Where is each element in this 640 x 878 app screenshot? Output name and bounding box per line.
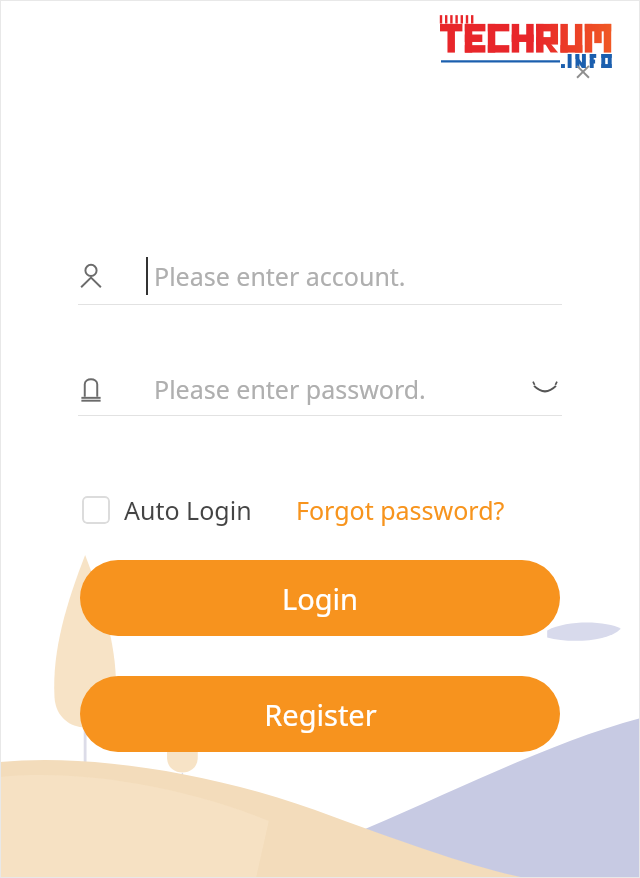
button[interactable]: Auto Login — [82, 488, 252, 532]
button[interactable]: Forgot password? — [296, 488, 505, 532]
staticText: Please enter account. — [154, 259, 406, 293]
button[interactable]: Please enter account. — [78, 248, 562, 304]
staticText: Register — [264, 695, 377, 734]
staticText: Auto Login — [124, 493, 252, 527]
staticText: Login — [282, 579, 358, 618]
button[interactable]: Register — [80, 676, 560, 752]
staticText: Please enter password. — [154, 372, 426, 406]
button[interactable]: Show password — [528, 372, 562, 406]
button[interactable]: Login — [80, 560, 560, 636]
button[interactable]: Please enter password. — [78, 363, 562, 415]
staticText: Forgot password? — [296, 493, 505, 527]
